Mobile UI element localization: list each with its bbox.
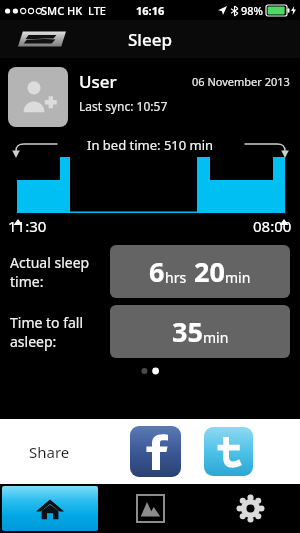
staticText: Time to fall asleep: [10, 313, 110, 351]
staticText: LTE [88, 3, 106, 18]
button[interactable]: User avatar [8, 67, 290, 127]
staticText: 06 November 2013 [192, 74, 290, 89]
staticText: Sleep [128, 28, 172, 51]
staticText: min [203, 328, 229, 347]
staticText: Share [29, 442, 70, 462]
button[interactable]: Share on Facebook [130, 426, 181, 477]
button[interactable]: Home [2, 486, 98, 531]
staticText: 16:16 [136, 3, 165, 18]
staticText: min [225, 268, 251, 287]
button[interactable]: Time to fall asleep: [10, 305, 290, 358]
button[interactable]: Photos [100, 484, 200, 533]
staticText: 11:30 [8, 216, 47, 236]
staticText: 98% [241, 3, 263, 18]
staticText: 20 [194, 253, 225, 290]
staticText: 08:00 [253, 216, 292, 236]
staticText: Actual sleep time: [10, 253, 110, 291]
staticText: In bed time: 510 min [87, 136, 214, 154]
staticText: hrs [165, 268, 187, 287]
other: User avatar [8, 67, 68, 127]
staticText: User [79, 70, 117, 93]
staticText: SMC HK [41, 3, 83, 18]
button[interactable]: Actual sleep time: [10, 245, 290, 298]
button[interactable]: Share on Twitter [204, 427, 253, 476]
staticText: Last sync: 10:57 [79, 98, 168, 114]
staticText: 6 [149, 253, 165, 290]
staticText: 35 [172, 313, 203, 350]
button[interactable]: Settings [200, 484, 300, 533]
